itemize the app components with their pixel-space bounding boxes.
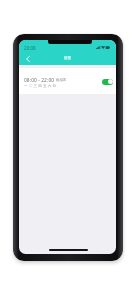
- staticText: 一二三四五六日: [24, 84, 58, 88]
- button[interactable]: Back: [21, 52, 35, 66]
- staticText: 设置: [64, 56, 71, 60]
- staticText: 20:08: [24, 45, 36, 51]
- button[interactable]: 08:00 - 22:00: [19, 68, 116, 94]
- staticText: 模拟器: [56, 78, 67, 82]
- staticText: 08:00 - 22:00: [24, 77, 55, 84]
- button[interactable]: Toggle schedule: [102, 79, 113, 85]
